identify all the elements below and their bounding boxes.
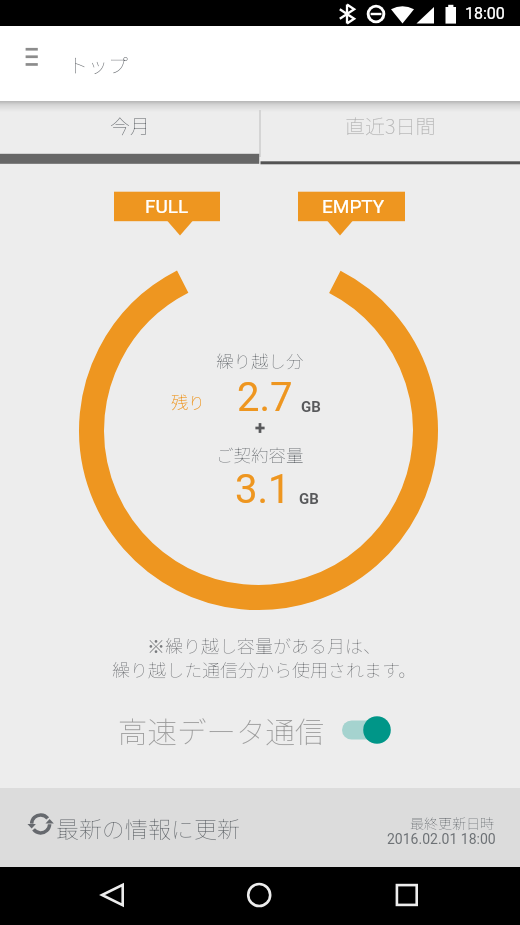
staticText: 18:00 <box>465 4 505 23</box>
button[interactable]: Refresh <box>0 788 520 867</box>
staticText: 残り <box>171 389 205 414</box>
button[interactable]: Back <box>0 867 174 925</box>
staticText: 直近3日間 <box>345 111 436 140</box>
staticText: GB <box>301 398 321 416</box>
staticText: 繰り越し分 <box>216 348 304 373</box>
staticText: 繰り越した通信分から使用されます。 <box>112 656 417 682</box>
staticText: トップ <box>68 50 128 79</box>
staticText: GB <box>299 490 319 508</box>
staticText: ※繰り越し容量がある月は、 <box>147 632 381 658</box>
staticText: FULL <box>145 195 189 217</box>
button[interactable]: 直近3日間 <box>260 101 520 165</box>
button[interactable]: Home <box>174 867 347 925</box>
staticText: 2.7 <box>237 374 293 421</box>
staticText: 最終更新日時 <box>410 813 494 833</box>
button[interactable]: 高速データ通信 <box>118 705 394 755</box>
staticText: 最新の情報に更新 <box>56 811 240 844</box>
staticText: ご契約容量 <box>216 442 304 467</box>
staticText: 今月 <box>110 111 150 140</box>
staticText: 2016.02.01 18:00 <box>387 831 496 847</box>
button[interactable]: Menu <box>16 42 48 74</box>
staticText: 高速データ通信 <box>118 709 325 752</box>
staticText: 3.1 <box>235 466 291 513</box>
other: Refresh <box>26 808 56 838</box>
button[interactable]: 今月 <box>0 101 260 165</box>
button[interactable]: Recent apps <box>347 867 520 925</box>
staticText: EMPTY <box>322 195 385 217</box>
